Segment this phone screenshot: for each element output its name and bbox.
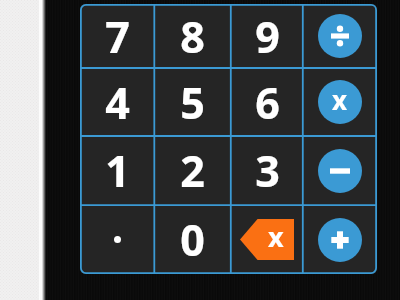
button[interactable]: Delete — [240, 219, 294, 260]
button[interactable]: 6 — [231, 68, 303, 136]
staticText: 9 — [255, 7, 280, 66]
button[interactable]: 9 — [231, 4, 303, 68]
button[interactable]: 7 — [80, 4, 154, 68]
button[interactable]: 4 — [80, 68, 154, 136]
staticText: 3 — [255, 141, 280, 200]
button[interactable]: Multiply — [318, 80, 362, 124]
staticText: x — [268, 218, 284, 255]
button[interactable]: 3 — [231, 136, 303, 205]
staticText: 5 — [180, 73, 205, 132]
button[interactable]: Divide — [318, 14, 362, 58]
button[interactable]: Add — [318, 218, 362, 262]
button[interactable]: Add — [303, 205, 377, 274]
staticText: 7 — [105, 7, 130, 66]
staticText: 4 — [105, 73, 130, 132]
button[interactable]: 2 — [154, 136, 231, 205]
button[interactable]: 5 — [154, 68, 231, 136]
button[interactable]: Subtract — [318, 149, 362, 193]
staticText: 6 — [255, 73, 280, 132]
button[interactable] — [80, 205, 154, 274]
staticText: 1 — [105, 141, 130, 200]
staticText: x — [332, 82, 348, 117]
button[interactable]: 1 — [80, 136, 154, 205]
button[interactable]: 0 — [154, 205, 231, 274]
staticText: 2 — [180, 141, 205, 200]
button[interactable]: Subtract — [303, 136, 377, 205]
button[interactable]: 8 — [154, 4, 231, 68]
button[interactable]: Multiply — [303, 68, 377, 136]
button[interactable]: Delete — [231, 205, 303, 274]
staticText: 8 — [180, 7, 205, 66]
staticText: 0 — [180, 210, 205, 269]
button[interactable]: Divide — [303, 4, 377, 68]
